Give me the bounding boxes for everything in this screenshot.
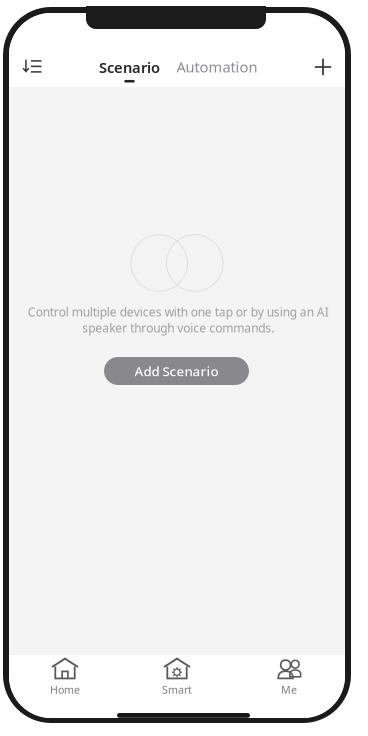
button[interactable]: Automation <box>171 54 263 86</box>
button[interactable]: Home <box>9 659 121 695</box>
staticText: Smart <box>162 682 192 697</box>
button[interactable]: Scenario <box>93 54 166 86</box>
button[interactable]: Sort <box>12 47 52 87</box>
button[interactable]: Add Scenario <box>104 357 249 385</box>
staticText: Control multiple devices with one tap or… <box>27 304 328 336</box>
staticText: Me <box>281 682 297 697</box>
button[interactable]: Add <box>303 47 343 87</box>
button[interactable]: Smart <box>121 659 233 695</box>
staticText: Home <box>50 682 80 697</box>
staticText: Scenario <box>99 57 160 77</box>
staticText: Add Scenario <box>134 362 218 380</box>
staticText: Automation <box>176 57 257 76</box>
button[interactable]: Me <box>233 659 345 695</box>
